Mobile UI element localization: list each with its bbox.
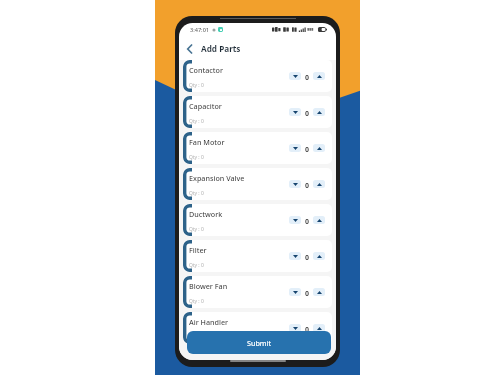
button[interactable]: Fan Motor	[183, 132, 332, 164]
staticText: Add Parts	[201, 43, 241, 54]
button[interactable]: Increase quantity	[313, 144, 325, 152]
staticText: Qty : 0	[189, 226, 204, 233]
button[interactable]: Expansion Valve	[183, 168, 332, 200]
button[interactable]: Submit	[187, 331, 331, 354]
staticText: 0	[305, 145, 310, 155]
staticText: 3:47:01	[190, 26, 210, 34]
staticText: Capacitor	[189, 101, 222, 111]
staticText: Qty : 0	[189, 154, 204, 161]
staticText: 0	[305, 325, 310, 335]
staticText: Filter	[189, 245, 207, 255]
staticText: 0	[305, 217, 310, 227]
staticText: Submit	[247, 338, 271, 348]
staticText: 0	[305, 73, 310, 83]
staticText: 0	[305, 253, 310, 263]
staticText: Qty : 0	[189, 118, 204, 125]
staticText: Fan Motor	[189, 137, 225, 147]
button[interactable]: Decrease quantity	[289, 72, 301, 80]
staticText: Qty : 0	[189, 190, 204, 197]
staticText: Expansion Valve	[189, 173, 245, 183]
staticText: Qty : 0	[189, 262, 204, 269]
button[interactable]: Decrease quantity	[289, 180, 301, 188]
button[interactable]: Back	[183, 42, 196, 55]
staticText: 0	[305, 181, 310, 191]
staticText: Qty : 0	[189, 298, 204, 305]
staticText: Air Handler	[189, 317, 229, 327]
button[interactable]: Increase quantity	[313, 108, 325, 116]
button[interactable]: Increase quantity	[313, 324, 325, 332]
button[interactable]: Air Handler	[183, 312, 332, 344]
staticText: Contactor	[189, 65, 224, 75]
staticText: 0	[305, 289, 310, 299]
button[interactable]: Capacitor	[183, 96, 332, 128]
button[interactable]: Increase quantity	[313, 180, 325, 188]
button[interactable]: Decrease quantity	[289, 252, 301, 260]
staticText: Blower Fan	[189, 281, 228, 291]
button[interactable]: Increase quantity	[313, 72, 325, 80]
button[interactable]: Increase quantity	[313, 252, 325, 260]
button[interactable]: Filter	[183, 240, 332, 272]
button[interactable]: Decrease quantity	[289, 216, 301, 224]
button[interactable]: Ductwork	[183, 204, 332, 236]
button[interactable]: Contactor	[183, 60, 332, 92]
staticText: Ductwork	[189, 209, 223, 219]
button[interactable]: Decrease quantity	[289, 288, 301, 296]
button[interactable]: Decrease quantity	[289, 144, 301, 152]
button[interactable]: Blower Fan	[183, 276, 332, 308]
button[interactable]: Increase quantity	[313, 288, 325, 296]
staticText: 0	[305, 109, 310, 119]
staticText: Qty : 0	[189, 82, 204, 89]
button[interactable]: Decrease quantity	[289, 108, 301, 116]
button[interactable]: Decrease quantity	[289, 324, 301, 332]
button[interactable]: Increase quantity	[313, 216, 325, 224]
